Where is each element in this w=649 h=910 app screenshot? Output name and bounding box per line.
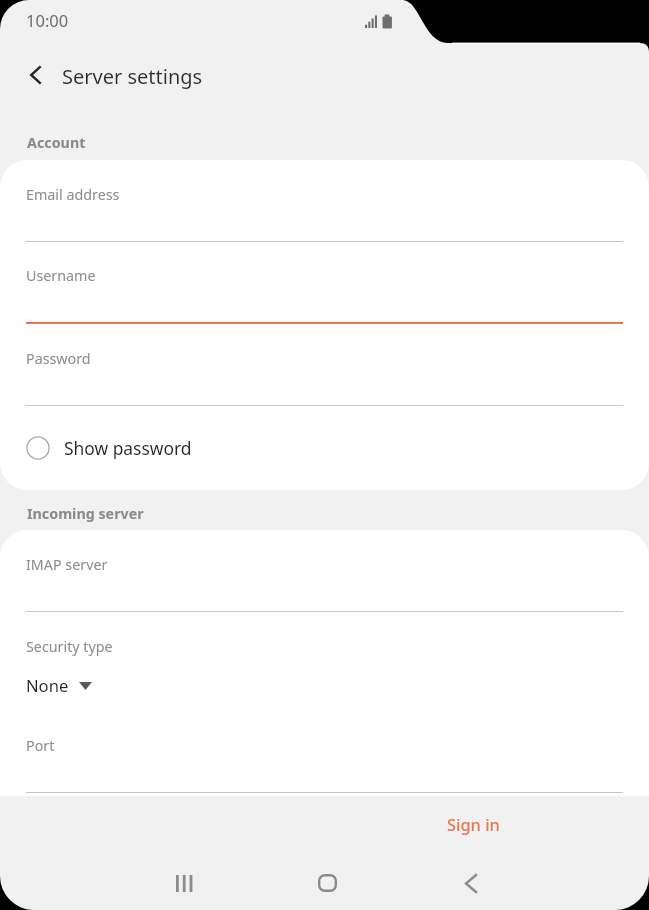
staticText: Security type xyxy=(26,637,113,656)
staticText: 10:00 xyxy=(26,9,69,31)
button[interactable]: Home xyxy=(287,856,367,910)
staticText: Username xyxy=(26,266,96,285)
button[interactable]: None xyxy=(26,674,92,697)
button[interactable]: Recent apps xyxy=(144,856,224,910)
staticText: None xyxy=(26,674,69,697)
staticText: Incoming server xyxy=(27,504,144,523)
staticText: Sign in xyxy=(447,813,500,835)
button[interactable]: Back xyxy=(13,53,57,97)
staticText: Port xyxy=(26,736,55,755)
button[interactable]: Show password xyxy=(0,418,649,478)
staticText: IMAP server xyxy=(26,555,108,574)
staticText: Email address xyxy=(26,185,120,204)
staticText: Server settings xyxy=(62,63,203,90)
staticText: Account xyxy=(27,133,86,152)
staticText: Show password xyxy=(64,436,192,460)
button[interactable]: Sign in xyxy=(431,801,516,847)
button[interactable]: Back xyxy=(431,856,511,910)
staticText: Password xyxy=(26,349,91,368)
